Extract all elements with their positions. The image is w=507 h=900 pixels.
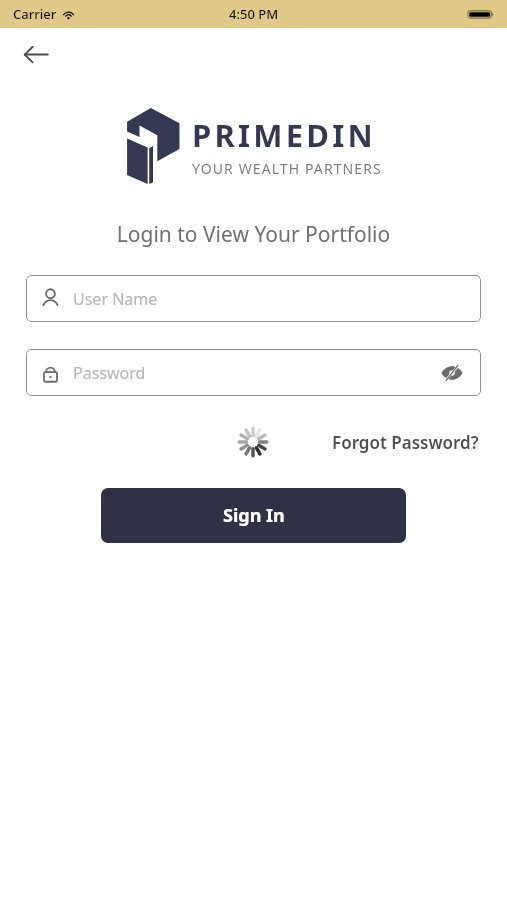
button[interactable]: Back [16,34,56,74]
staticText: PRIMEDIN [192,114,376,156]
button[interactable]: Forgot Password? [330,425,481,460]
button[interactable]: Password [26,349,481,396]
staticText: Carrier [13,5,57,23]
staticText: YOUR WEALTH PARTNERS [192,159,382,178]
staticText: User Name [73,288,158,310]
button[interactable]: Sign In [101,488,406,543]
staticText: Password [73,362,146,384]
staticText: Login to View Your Portfolio [0,220,507,249]
button[interactable]: User Name [26,275,481,322]
staticText: 4:50 PM [229,5,279,23]
staticText: Sign In [223,503,285,528]
staticText: Forgot Password? [332,431,479,454]
button[interactable]: Show password [437,358,467,388]
